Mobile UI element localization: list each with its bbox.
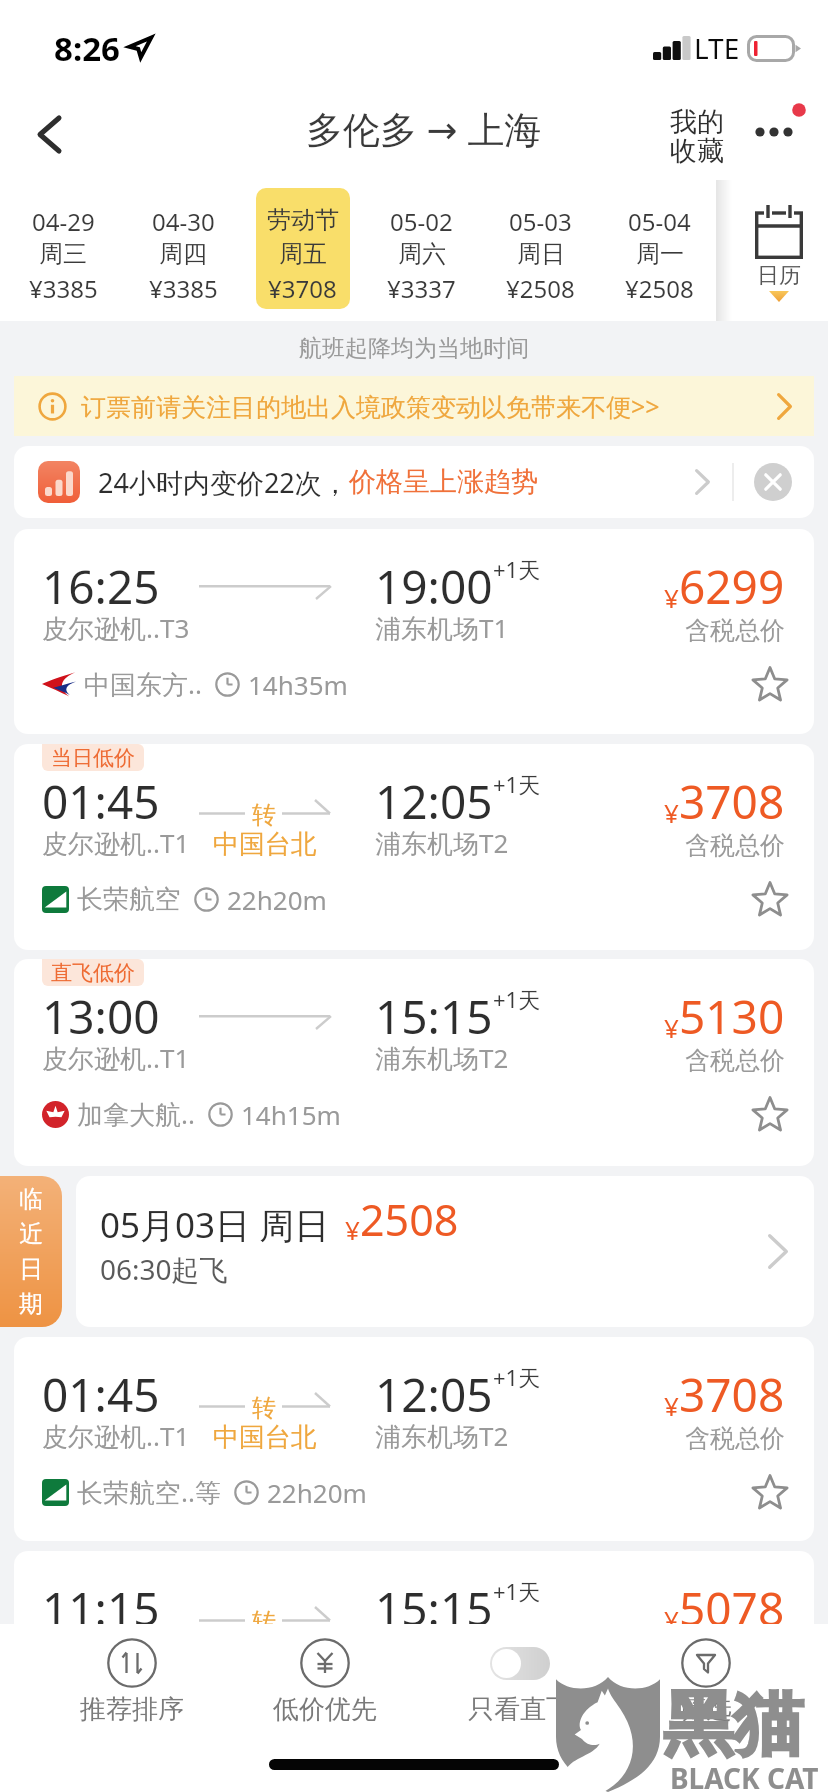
staticText: 04-29 [32,205,95,238]
staticText: 周四 [159,239,207,269]
staticText: 皮尔逊机..T1 [42,825,190,861]
staticText: 浦东机场T1 [375,610,509,646]
staticText: 3708 [679,1363,785,1426]
button[interactable]: 筛选 [644,1632,768,1732]
staticText: +1天 [493,554,541,584]
staticText: 我的 [670,105,724,139]
staticText: 浦东机场T2 [375,1040,509,1076]
staticText: 皮尔逊机..T1 [42,1418,190,1454]
staticText: 订票前请关注目的地出入境政策变动以免带来不便>> [81,389,660,423]
button[interactable]: 当日低价 [14,744,814,950]
staticText: 周一 [636,239,684,269]
staticText: 皮尔逊机..T3 [42,610,190,646]
staticText: 14h15m [241,1689,341,1724]
staticText: 24小时内变价22次， [98,464,349,501]
staticText: 06:30起飞 [100,1250,228,1288]
button[interactable]: 劳动节 [243,180,362,321]
button[interactable]: 11:15 [14,1551,814,1756]
staticText: 多伦多 → 上海 [306,103,542,154]
staticText: 15:15 [375,985,493,1048]
staticText: 05-03 [509,205,572,238]
button[interactable]: Back [4,90,94,180]
button[interactable]: 只看直飞 [458,1632,582,1732]
staticText: 中国东方.. [84,666,202,702]
staticText: 转 [252,1607,276,1637]
button[interactable]: Favorite [743,1087,797,1141]
staticText: 12:05 [375,770,493,833]
staticText: ¥ [664,795,679,830]
staticText: ¥ [664,1010,679,1045]
staticText: 16:25 [42,555,160,618]
staticText: +1天 [493,1362,541,1392]
button[interactable]: 01:45 [14,1337,814,1541]
staticText: 含税总价 [685,1045,785,1076]
button[interactable]: 我的 [660,90,734,180]
staticText: 长荣航空..等 [77,1474,221,1510]
staticText: 15:15 [375,1577,493,1640]
button[interactable]: More options [738,90,820,180]
staticText: LTE [694,29,740,67]
staticText: 推荐排序 [80,1693,184,1726]
button[interactable]: 05-04 [600,180,719,321]
button[interactable]: Favorite [743,1465,797,1519]
staticText: BLACK CAT [670,1759,819,1792]
staticText: 周三 [39,239,87,269]
staticText: 11:15 [42,1577,160,1640]
staticText: 含税总价 [685,1637,785,1668]
staticText: 含税总价 [685,830,785,861]
staticText: 05-04 [628,205,691,238]
staticText: 12:05 [375,1363,493,1426]
staticText: +1天 [493,769,541,799]
button[interactable]: Calendar [716,180,828,321]
staticText: 加拿大航.. [77,1096,195,1132]
button[interactable]: 05-02 [362,180,481,321]
staticText: 浦东机场T2 [375,825,509,861]
staticText: 6299 [679,555,785,618]
staticText: ¥2508 [625,272,694,305]
button[interactable]: 直飞低价 [14,959,814,1166]
staticText: ¥ [345,1212,360,1247]
staticText: ¥3385 [29,272,98,305]
button[interactable]: 推荐排序 [70,1632,194,1732]
staticText: 周六 [398,239,446,269]
button[interactable]: 05月03日 周日 [76,1176,814,1327]
staticText: 临 [19,1184,43,1214]
staticText: 劳动节 [267,205,339,235]
button[interactable]: Favorite [743,1679,797,1733]
button[interactable]: 04-29 [3,180,123,321]
staticText: 当日低价 [51,745,135,771]
staticText: 含税总价 [685,1423,785,1454]
button[interactable]: 24小时内变价22次， [14,446,814,518]
staticText: 日历 [757,262,801,290]
button[interactable]: 低价优先 [263,1632,387,1732]
staticText: 期 [19,1289,43,1319]
staticText: 浦东机场T2 [375,1418,509,1454]
button[interactable]: Favorite [743,657,797,711]
staticText: 浦东机场T2 [375,1632,509,1668]
staticText: 13:00 [42,985,160,1048]
staticText: 皮尔逊机..T1 [42,1632,190,1668]
staticText: 05月03日 周日 [100,1201,330,1249]
staticText: +1天 [493,1576,541,1606]
staticText: 14h35m [248,667,348,702]
staticText: 长荣航空 [77,883,181,916]
staticText: ¥ [664,1388,679,1423]
staticText: 5078 [679,1577,785,1640]
button[interactable]: 05-03 [481,180,600,321]
button[interactable]: Favorite [743,872,797,926]
button[interactable]: 订票前请关注目的地出入境政策变动以免带来不便>> [14,376,814,436]
staticText: 收藏 [670,134,724,168]
staticText: 皮尔逊机..T1 [42,1040,190,1076]
staticText: 01:45 [42,770,160,833]
staticText: 日 [19,1254,43,1284]
button[interactable]: Close [754,463,792,501]
staticText: ¥2508 [506,272,575,305]
button[interactable]: 04-30 [123,180,243,321]
staticText: 2508 [360,1190,459,1249]
staticText: 只看直飞 [468,1693,572,1726]
staticText: 22h20m [267,1475,367,1510]
staticText: 含税总价 [685,615,785,646]
staticText: 中国台北 [213,828,317,861]
button[interactable]: 16:25 [14,529,814,734]
staticText: 01:45 [42,1363,160,1426]
